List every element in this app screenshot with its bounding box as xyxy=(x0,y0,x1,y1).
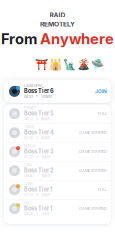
staticText: 07:10 5 20km xyxy=(24,193,50,197)
staticText: 01:20 4 50km xyxy=(24,155,50,159)
button[interactable]: LAUNCHPAD xyxy=(4,80,111,103)
staticText: 🌋 xyxy=(77,58,90,70)
staticText: GAME STARTED xyxy=(79,168,107,173)
staticText: CAIRO xyxy=(24,182,33,186)
staticText: ⛩️ xyxy=(35,58,48,70)
staticText: SYDNEY xyxy=(24,106,36,110)
staticText: Boss Tier 2 xyxy=(24,167,54,174)
staticText: FULL xyxy=(98,111,107,116)
staticText: 05:05 2 10km xyxy=(24,212,50,216)
button[interactable]: SYDNEY xyxy=(4,104,111,123)
staticText: 09:40 1 30km xyxy=(24,174,50,178)
staticText: Boss Tier 1 xyxy=(24,186,52,193)
staticText: From xyxy=(1,30,40,48)
staticText: GAME STARTED xyxy=(79,149,107,154)
staticText: 08:52 1 100km xyxy=(24,94,52,99)
staticText: OSLO xyxy=(24,201,32,205)
button[interactable]: BERLIN xyxy=(4,142,111,161)
staticText: 03:55 2 60km xyxy=(24,136,50,140)
staticText: GAME STARTED xyxy=(79,206,107,211)
staticText: 🛸 xyxy=(91,58,104,70)
staticText: RAID xyxy=(49,11,65,19)
staticText: Boss Tier 6 xyxy=(24,88,54,94)
staticText: BERLIN xyxy=(24,144,35,148)
staticText: LIMA xyxy=(24,163,32,167)
button[interactable]: LIMA xyxy=(4,161,111,180)
staticText: JOIN xyxy=(95,88,107,94)
button[interactable]: CAIRO xyxy=(4,180,111,199)
staticText: Boss Tier 1 xyxy=(24,205,52,212)
staticText: TOKYO xyxy=(24,125,34,129)
button[interactable]: TOKYO xyxy=(4,123,111,142)
staticText: Boss Tier 5 xyxy=(24,110,54,117)
staticText: REMOTELY xyxy=(40,20,75,28)
staticText: FULL xyxy=(98,187,107,192)
staticText: 🗽 xyxy=(63,58,76,70)
staticText: 🕌 xyxy=(49,58,62,70)
button[interactable]: OSLO xyxy=(4,199,111,218)
staticText: 06:12 3 80km xyxy=(24,117,50,121)
staticText: GAME STARTED xyxy=(79,130,107,135)
staticText: Anywhere xyxy=(40,30,114,48)
staticText: Boss Tier 3 xyxy=(24,148,54,155)
staticText: LAUNCHPAD xyxy=(24,84,42,88)
staticText: Boss Tier 4 xyxy=(24,129,54,136)
